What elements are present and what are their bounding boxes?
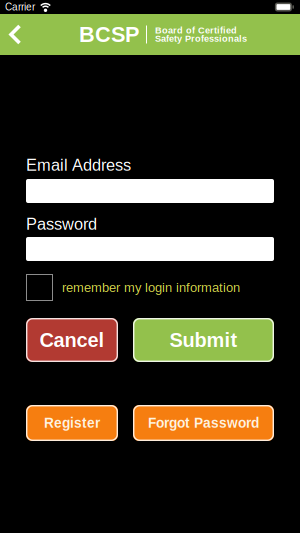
staticText: Cancel (39, 329, 104, 351)
staticText: BCSP (79, 22, 139, 47)
button[interactable]: remember my login information (26, 274, 274, 301)
button[interactable]: Submit (133, 318, 274, 362)
staticText: Carrier (5, 1, 35, 13)
staticText: Submit (169, 329, 237, 351)
staticText: Board of Certified (155, 25, 237, 35)
staticText: Password (26, 215, 97, 233)
staticText: Forgot Password (148, 415, 259, 431)
staticText: Register (44, 415, 100, 431)
button[interactable]: Forgot Password (133, 405, 274, 441)
staticText: Email Address (26, 156, 131, 174)
button[interactable]: Back (0, 14, 28, 54)
staticText: Safety Professionals (155, 33, 247, 44)
button[interactable]: Cancel (26, 318, 118, 362)
button[interactable]: Register (26, 405, 118, 441)
staticText: remember my login information (62, 280, 240, 295)
